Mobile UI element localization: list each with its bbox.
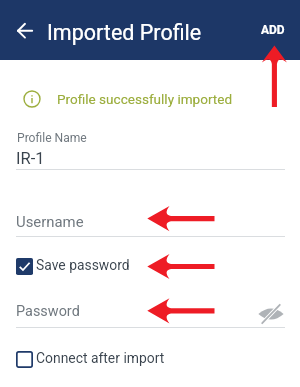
staticText: Username: [16, 213, 84, 230]
button[interactable]: [0, 205, 300, 237]
button[interactable]: Back: [5, 10, 44, 49]
button[interactable]: Connect after import: [12, 347, 173, 372]
staticText: Imported Profile: [47, 20, 202, 45]
staticText: Save password: [36, 257, 130, 273]
button[interactable]: Show password: [257, 300, 285, 328]
staticText: Password: [16, 303, 80, 320]
staticText: IR-1: [16, 149, 45, 168]
button[interactable]: ADD: [250, 10, 296, 49]
button[interactable]: [0, 124, 300, 170]
staticText: ADD: [261, 23, 285, 37]
staticText: Profile Name: [17, 131, 87, 145]
staticText: Profile successfully imported: [57, 91, 233, 107]
button[interactable]: [0, 296, 300, 328]
staticText: Connect after import: [36, 350, 165, 366]
button[interactable]: Save password: [12, 254, 138, 279]
